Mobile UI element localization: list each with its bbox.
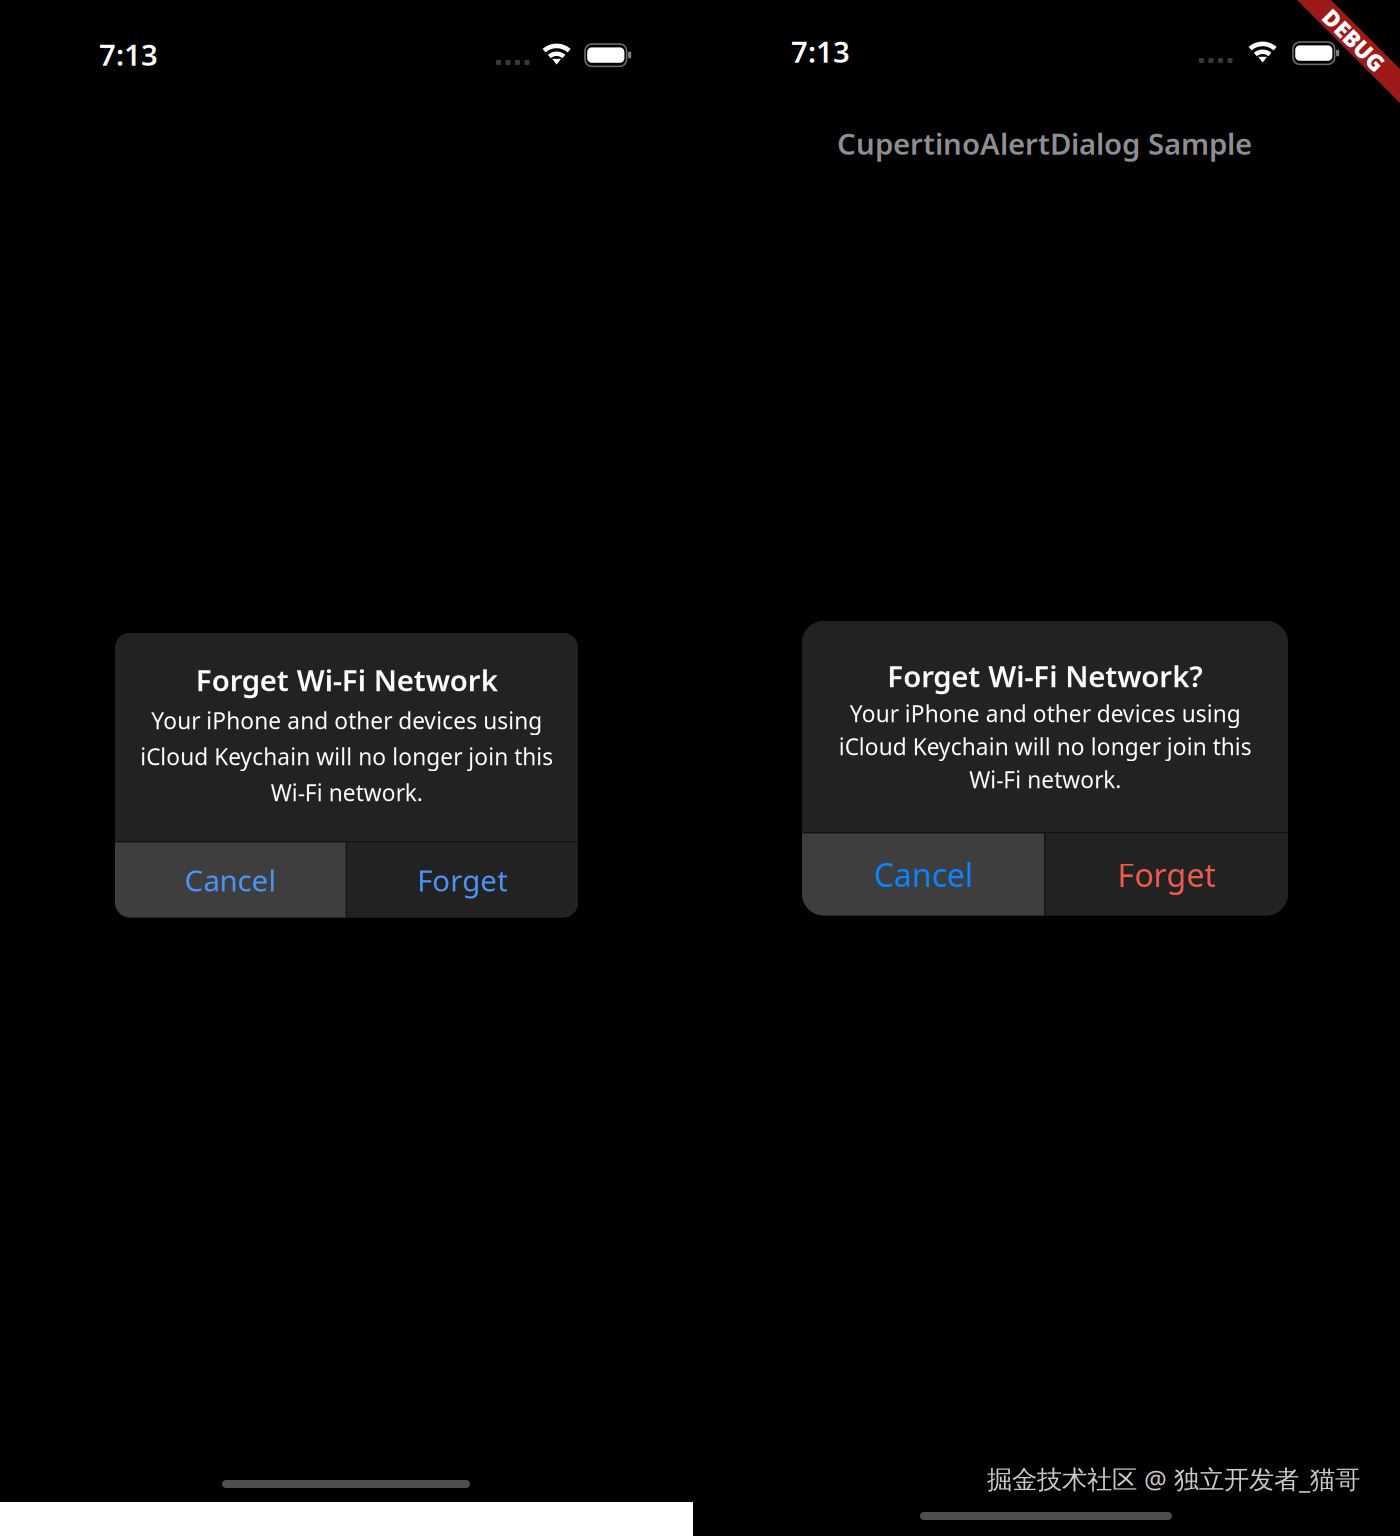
staticText: Forget [417,860,508,899]
button[interactable]: Cancel [115,842,346,917]
staticText: Forget Wi-Fi Network? [887,656,1203,695]
staticText: Forget [1117,853,1216,896]
staticText: DEBUG [1315,25,1393,55]
staticText: 7:13 [99,35,158,74]
staticText: Cancel [184,860,276,899]
staticText: 7:13 [791,32,850,71]
staticText: Cancel [874,853,973,896]
staticText: 掘金技术社区 @ 独立开发者_猫哥 [987,1462,1360,1496]
staticText: CupertinoAlertDialog Sample [837,124,1252,163]
staticText: Your iPhone and other devices using iClo… [140,705,553,808]
button[interactable]: Cancel [802,833,1044,915]
staticText: Your iPhone and other devices using iClo… [838,698,1251,795]
button[interactable]: Forget [1046,833,1288,915]
button[interactable]: Forget [347,842,578,917]
staticText: Forget Wi-Fi Network [195,660,497,699]
